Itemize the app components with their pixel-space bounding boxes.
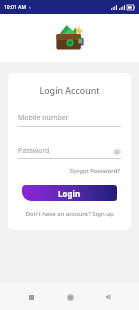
button[interactable]: Forgot Password? [69, 166, 121, 176]
button[interactable]: Mobile number [18, 113, 121, 127]
staticText: Login [58, 188, 81, 199]
button[interactable]: Back [100, 289, 116, 305]
button[interactable]: Don't have an account? Sign up [18, 210, 121, 218]
button[interactable]: Password [18, 146, 121, 159]
staticText: Forgot Password? [70, 167, 120, 175]
staticText: 10:01 AM [4, 4, 26, 11]
staticText: Login Account [18, 84, 121, 96]
button[interactable]: Recent apps [23, 289, 39, 305]
staticText: Mobile number [18, 113, 69, 123]
staticText: Don't have an account? Sign up [25, 210, 114, 218]
button[interactable]: Home [62, 289, 78, 305]
staticText: Password [18, 146, 112, 156]
button[interactable]: Login [22, 185, 117, 201]
button[interactable]: Show password [112, 147, 121, 156]
